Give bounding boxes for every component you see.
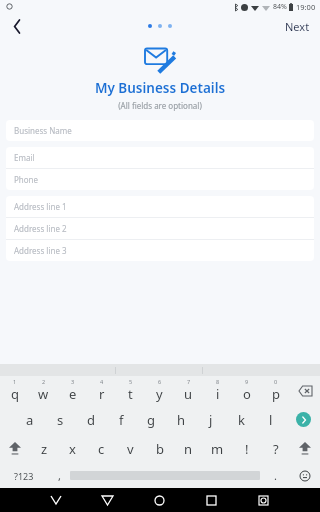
staticText: k [238, 411, 245, 429]
button[interactable]: Hide keyboard [30, 488, 81, 512]
button[interactable]: 3 [58, 376, 87, 405]
button[interactable]: Email [6, 147, 314, 168]
button[interactable]: Back [81, 488, 133, 512]
button[interactable]: 9 [232, 376, 261, 405]
staticText: ! [245, 440, 249, 458]
staticText: o [243, 385, 251, 403]
staticText: t [128, 385, 133, 403]
button[interactable]: ! [232, 434, 261, 463]
staticText: Phone [14, 174, 39, 185]
staticText: r [99, 385, 105, 403]
staticText: p [272, 385, 280, 403]
button[interactable]: n [174, 434, 203, 463]
button[interactable]: z [30, 434, 58, 463]
button[interactable]: 0 [261, 376, 290, 405]
staticText: 0 [274, 378, 278, 385]
staticText: Address line 2 [14, 223, 67, 234]
button[interactable]: h [166, 405, 196, 434]
staticText: s [57, 411, 64, 429]
button[interactable]: 2 [29, 376, 58, 405]
staticText: 4 [100, 378, 104, 385]
staticText: b [156, 440, 164, 458]
button[interactable]: 6 [145, 376, 174, 405]
button[interactable]: Shift [0, 434, 30, 463]
button[interactable]: j [196, 405, 226, 434]
button[interactable]: x [58, 434, 87, 463]
staticText: v [127, 440, 134, 458]
button[interactable]: Shift [290, 434, 320, 463]
button[interactable]: 4 [87, 376, 116, 405]
button[interactable]: Business Name [6, 120, 314, 141]
staticText: e [69, 385, 77, 403]
button[interactable]: a [14, 405, 45, 434]
button[interactable]: 1 [0, 376, 29, 405]
button[interactable]: b [145, 434, 174, 463]
button[interactable]: l [256, 405, 286, 434]
staticText: ?123 [14, 470, 34, 482]
staticText: (All fields are optional) [0, 100, 320, 111]
button[interactable]: g [136, 405, 166, 434]
button[interactable]: Back [0, 13, 34, 39]
button[interactable]: Emoji [290, 463, 320, 488]
staticText: x [69, 440, 76, 458]
staticText: 3 [71, 378, 75, 385]
staticText: j [209, 411, 213, 429]
staticText: 19:00 [296, 2, 316, 12]
button[interactable]: 8 [203, 376, 232, 405]
staticText: 9 [245, 378, 249, 385]
staticText: Next [285, 19, 310, 34]
staticText: 8 [216, 378, 220, 385]
button[interactable]: Next [275, 13, 320, 39]
staticText: 5 [129, 378, 133, 385]
staticText: a [26, 411, 34, 429]
button[interactable]: Address line 3 [6, 240, 314, 261]
staticText: c [98, 440, 105, 458]
button[interactable]: Phone [6, 169, 314, 190]
staticText: Address line 1 [14, 201, 67, 212]
button[interactable]: Recents [185, 488, 237, 512]
button[interactable]: k [226, 405, 256, 434]
staticText: g [147, 411, 155, 429]
staticText: q [11, 385, 19, 403]
staticText: , [58, 468, 61, 483]
button[interactable]: f [106, 405, 136, 434]
button[interactable]: Screenshot [237, 488, 289, 512]
button[interactable]: s [45, 405, 76, 434]
staticText: i [216, 385, 220, 403]
button[interactable]: Home [133, 488, 185, 512]
staticText: u [184, 385, 193, 403]
staticText: 7 [187, 378, 191, 385]
staticText: m [211, 440, 224, 458]
staticText: Address line 3 [14, 245, 67, 256]
button[interactable]: , [48, 463, 70, 488]
staticText: 2 [42, 378, 46, 385]
button[interactable]: m [203, 434, 232, 463]
button[interactable]: Enter [286, 405, 320, 434]
button[interactable]: 5 [116, 376, 145, 405]
button[interactable]: Address line 2 [6, 218, 314, 239]
button[interactable]: . [260, 463, 290, 488]
button[interactable]: c [87, 434, 116, 463]
button[interactable]: ?123 [0, 463, 48, 488]
staticText: Business Name [14, 125, 72, 136]
staticText: My Business Details [0, 79, 320, 97]
staticText: ? [273, 440, 279, 458]
staticText: n [184, 440, 193, 458]
button[interactable]: 7 [174, 376, 203, 405]
staticText: 84% [273, 2, 287, 12]
staticText: f [119, 411, 124, 429]
button[interactable]: d [76, 405, 106, 434]
button[interactable]: ? [261, 434, 290, 463]
staticText: h [177, 411, 186, 429]
staticText: Email [14, 152, 35, 163]
button[interactable]: v [116, 434, 145, 463]
staticText: 1 [13, 378, 17, 385]
staticText: . [274, 468, 277, 483]
staticText: z [41, 440, 48, 458]
staticText: y [156, 385, 163, 403]
staticText: 6 [158, 378, 162, 385]
button[interactable]: Backspace [290, 376, 320, 405]
staticText: d [87, 411, 95, 429]
button[interactable]: Address line 1 [6, 196, 314, 217]
